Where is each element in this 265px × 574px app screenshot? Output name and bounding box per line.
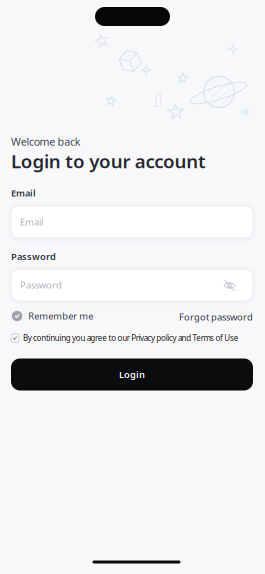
staticText: Login to your account xyxy=(11,149,206,173)
button[interactable]: Forgot password xyxy=(153,310,253,324)
button[interactable]: Password xyxy=(11,269,253,301)
staticText: Password xyxy=(20,279,62,291)
button[interactable]: Remember me xyxy=(12,309,132,323)
button[interactable]: Email xyxy=(11,206,253,238)
staticText: Password xyxy=(11,250,56,263)
button[interactable]: Login xyxy=(11,358,253,390)
staticText: Remember me xyxy=(28,310,93,322)
staticText: Login xyxy=(119,368,145,381)
staticText: Email xyxy=(20,216,43,228)
staticText: Email xyxy=(11,187,36,199)
staticText: Welcome back xyxy=(11,134,81,149)
button[interactable]: By continuing you agree to our Privacy p… xyxy=(11,332,263,344)
staticText: By continuing you agree to our Privacy p… xyxy=(23,333,239,343)
staticText: Forgot password xyxy=(179,311,253,323)
